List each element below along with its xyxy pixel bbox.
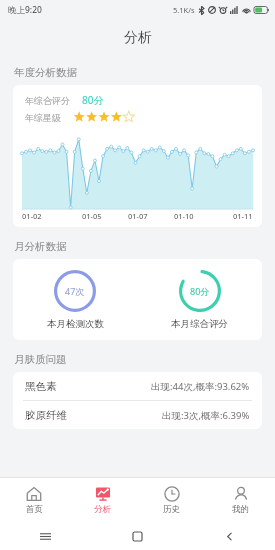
button[interactable]: 我的 — [206, 478, 275, 522]
button[interactable]: 首页 — [0, 478, 68, 522]
button[interactable]: 分析 — [68, 478, 137, 522]
button[interactable]: 47次 — [13, 269, 137, 330]
staticText: 月肤质问题 — [14, 353, 67, 366]
staticText: 01-07 — [128, 211, 148, 221]
staticText: 出现:44次,概率:93.62% — [151, 380, 250, 393]
staticText: 分析 — [94, 504, 111, 515]
staticText: 01-05 — [82, 211, 102, 221]
staticText: 01-11 — [233, 211, 253, 221]
staticText: 黑色素 — [25, 380, 57, 393]
staticText: 47次 — [65, 285, 85, 297]
staticText: 首页 — [26, 504, 43, 515]
staticText: 晚上9:20 — [8, 4, 42, 16]
staticText: 分析 — [124, 29, 152, 47]
staticText: 年度分析数据 — [14, 66, 77, 79]
staticText: 我的 — [232, 504, 249, 515]
button[interactable]: 历史 — [137, 478, 206, 522]
staticText: 01-02 — [22, 211, 42, 221]
staticText: 本月检测次数 — [47, 318, 104, 330]
staticText: 01-10 — [174, 211, 194, 221]
staticText: 5.1K/s — [173, 5, 195, 15]
staticText: 胶原纤维 — [25, 409, 67, 422]
staticText: 80分 — [82, 93, 104, 107]
staticText: 出现:3次,概率:6.39% — [162, 409, 250, 422]
staticText: 本月综合评分 — [171, 318, 228, 330]
staticText: 80分 — [190, 285, 210, 297]
button[interactable]: 年综合评分 — [13, 85, 262, 227]
staticText: 月分析数据 — [14, 240, 67, 253]
button[interactable]: 80分 — [137, 269, 262, 330]
button[interactable]: 胶原纤维 — [13, 401, 262, 429]
staticText: 历史 — [163, 504, 180, 515]
staticText: 年综合评分 — [25, 95, 70, 106]
button[interactable]: 黑色素 — [13, 372, 262, 400]
staticText: 年综星级 — [25, 112, 61, 123]
